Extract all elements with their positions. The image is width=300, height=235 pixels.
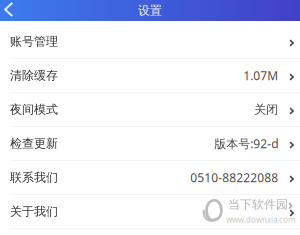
button[interactable]: 关于我们: [0, 195, 300, 229]
button[interactable]: 检查更新: [0, 127, 300, 161]
staticText: www.downxia.com: [226, 214, 295, 225]
staticText: 清除缓存: [10, 68, 58, 83]
staticText: 当下软件园: [228, 197, 288, 212]
staticText: 版本号:92-d: [214, 135, 278, 151]
staticText: 检查更新: [10, 136, 58, 151]
staticText: 账号管理: [10, 34, 58, 49]
staticText: 夜间模式: [10, 102, 58, 117]
staticText: 0510-88222088: [190, 169, 278, 185]
button[interactable]: Back: [0, 0, 21, 21]
button[interactable]: 账号管理: [0, 25, 300, 59]
staticText: 关于我们: [10, 204, 58, 219]
button[interactable]: 夜间模式: [0, 93, 300, 127]
staticText: 设置: [138, 3, 162, 18]
staticText: 关闭: [254, 102, 278, 117]
button[interactable]: 联系我们: [0, 161, 300, 195]
staticText: ›: [288, 196, 293, 213]
staticText: 1.07M: [243, 67, 278, 83]
button[interactable]: 清除缓存: [0, 59, 300, 93]
staticText: 联系我们: [10, 170, 58, 185]
